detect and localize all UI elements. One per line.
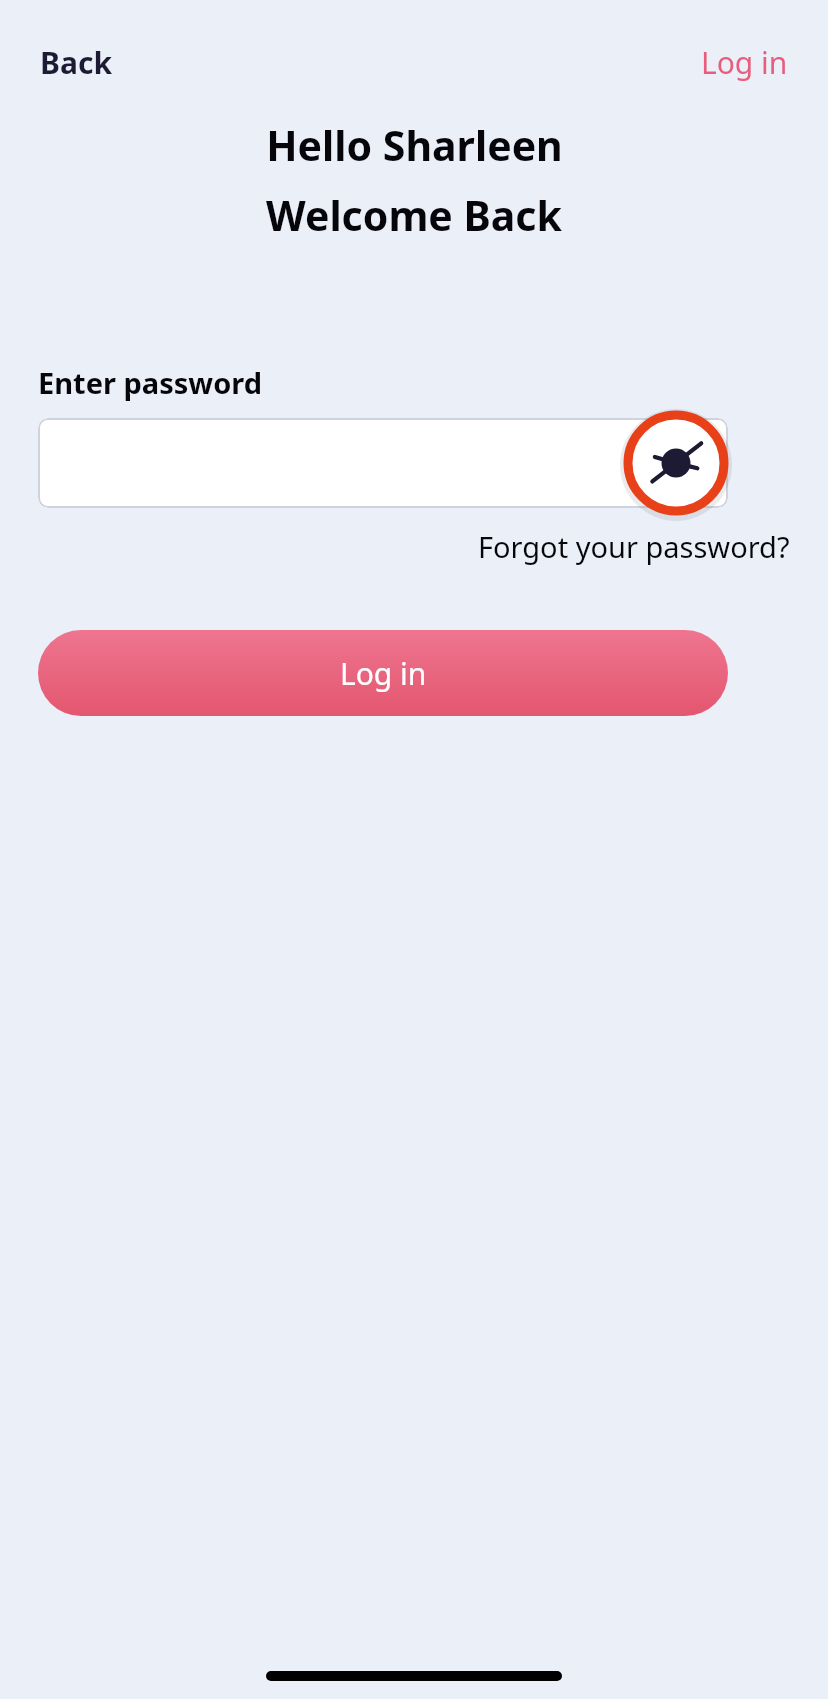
button[interactable]: Log in	[687, 36, 802, 89]
button[interactable]: Hide password	[611, 398, 741, 528]
staticText: Back	[40, 42, 112, 83]
button[interactable]: Forgot your password?	[464, 521, 804, 572]
staticText: Enter password	[38, 363, 262, 402]
staticText: Welcome Back	[266, 187, 562, 243]
button[interactable]: Back	[26, 36, 126, 89]
staticText: Log in	[340, 653, 427, 694]
button[interactable]: Log in	[38, 630, 728, 716]
staticText: Forgot your password?	[478, 527, 790, 566]
staticText: Log in	[701, 42, 788, 83]
button[interactable]	[38, 418, 728, 508]
staticText: Hello Sharleen	[266, 117, 563, 173]
